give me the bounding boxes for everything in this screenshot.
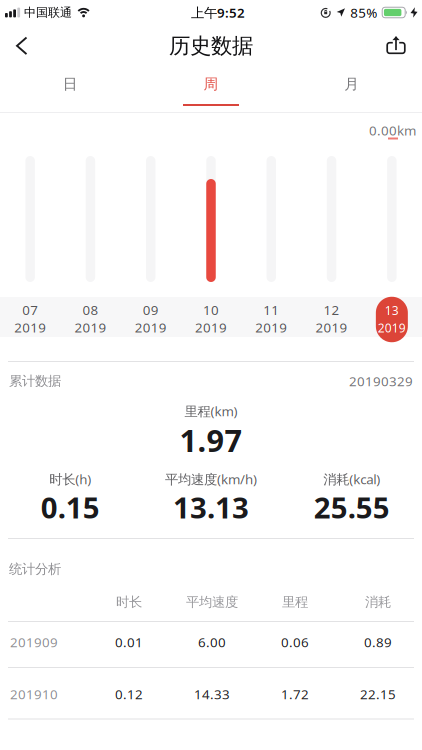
staticText: 上午9:52 [191, 4, 245, 21]
staticText: 里程 [282, 594, 308, 610]
staticText: 0.89 [364, 633, 392, 651]
button[interactable]: 返回 [0, 28, 28, 63]
staticText: 平均速度 [186, 594, 238, 610]
staticText: 2019 [378, 320, 406, 336]
staticText: 20190329 [349, 372, 413, 390]
button[interactable]: 11 [241, 297, 301, 337]
button[interactable]: 日 [0, 64, 141, 112]
button[interactable]: 09 [121, 297, 181, 337]
staticText: 时长(h) [49, 470, 91, 488]
staticText: 2019 [135, 318, 167, 336]
button[interactable]: 13 [362, 297, 422, 337]
staticText: 2019 [316, 318, 348, 336]
staticText: 13 [385, 302, 399, 318]
button[interactable]: 10 [181, 297, 241, 337]
staticText: 0.06 [281, 633, 309, 651]
staticText: 22.15 [360, 685, 396, 703]
staticText: 2019 [14, 318, 46, 336]
staticText: 6.00 [198, 633, 226, 651]
staticText: 里程(km) [184, 402, 237, 420]
button[interactable]: 12 [301, 297, 362, 337]
staticText: 中国联通 [24, 5, 72, 20]
staticText: 0.12 [115, 685, 143, 703]
staticText: 09 [143, 301, 159, 319]
staticText: 07 [22, 301, 38, 319]
staticText: 2019 [255, 318, 287, 336]
staticText: 统计分析 [9, 561, 61, 577]
staticText: 周 [203, 75, 218, 93]
staticText: 日 [63, 75, 78, 93]
staticText: 消耗(kcal) [323, 470, 380, 488]
staticText: 2019 [74, 318, 106, 336]
staticText: 0.00km [369, 121, 416, 139]
staticText: 25.55 [314, 487, 390, 526]
button[interactable]: 月 [281, 64, 422, 112]
staticText: 月 [344, 75, 359, 93]
staticText: 平均速度(km/h) [165, 470, 257, 488]
staticText: 2019 [195, 318, 227, 336]
staticText: 1.97 [179, 420, 242, 460]
staticText: 历史数据 [169, 33, 253, 59]
staticText: 14.33 [194, 685, 230, 703]
staticText: 10 [203, 301, 219, 319]
staticText: 1.72 [281, 685, 309, 703]
button[interactable]: 08 [60, 297, 121, 337]
staticText: 0.01 [115, 633, 143, 651]
staticText: 201910 [10, 685, 58, 703]
staticText: 13.13 [173, 487, 249, 526]
button[interactable]: 分享 [387, 29, 422, 63]
staticText: 201909 [10, 633, 58, 651]
staticText: 11 [263, 301, 279, 319]
staticText: 消耗 [365, 594, 391, 610]
staticText: 85% [350, 4, 377, 21]
staticText: 12 [324, 301, 340, 319]
button[interactable]: 周 [141, 64, 281, 112]
staticText: 累计数据 [9, 373, 61, 389]
staticText: 0.15 [41, 487, 100, 526]
staticText: 时长 [116, 594, 142, 610]
button[interactable]: 07 [0, 297, 60, 337]
staticText: 08 [82, 301, 98, 319]
